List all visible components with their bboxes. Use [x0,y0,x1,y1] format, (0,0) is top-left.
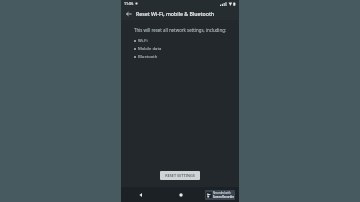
staticText: Reset Wi-Fi, mobile & Bluetooth [136,10,215,17]
button[interactable]: Back [121,187,161,202]
staticText: Mobile data [138,46,162,52]
staticText: Screen Recorder [213,195,234,199]
staticText: Recorded with [213,191,231,195]
button[interactable]: Home [161,187,200,202]
staticText: 11:06 [124,1,134,6]
staticText: Bluetooth [138,54,158,60]
staticText: RESET SETTINGS [165,173,195,178]
staticText: Wi-Fi [138,38,148,44]
staticText: This will reset all network settings, in… [134,27,227,33]
button[interactable]: Back [124,9,134,19]
button[interactable]: RESET SETTINGS [160,171,200,180]
